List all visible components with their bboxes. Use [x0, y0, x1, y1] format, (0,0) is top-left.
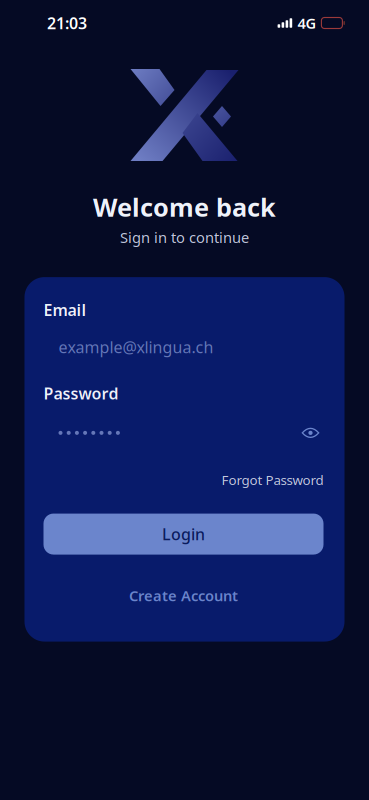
staticText: 4G: [297, 13, 316, 33]
button[interactable]: Login: [43, 514, 323, 555]
staticText: example@xlingua.ch: [58, 336, 213, 358]
staticText: 21:03: [47, 12, 87, 34]
button[interactable]: Show password: [297, 422, 323, 444]
staticText: Login: [162, 523, 205, 545]
button[interactable]: Create Account: [43, 583, 323, 609]
button[interactable]: Forgot Password: [43, 471, 323, 489]
staticText: Welcome back: [93, 190, 276, 224]
staticText: Forgot Password: [221, 471, 323, 489]
staticText: Create Account: [129, 586, 238, 605]
staticText: Email: [43, 299, 86, 320]
staticText: Sign in to continue: [120, 228, 249, 247]
staticText: Password: [43, 383, 118, 404]
